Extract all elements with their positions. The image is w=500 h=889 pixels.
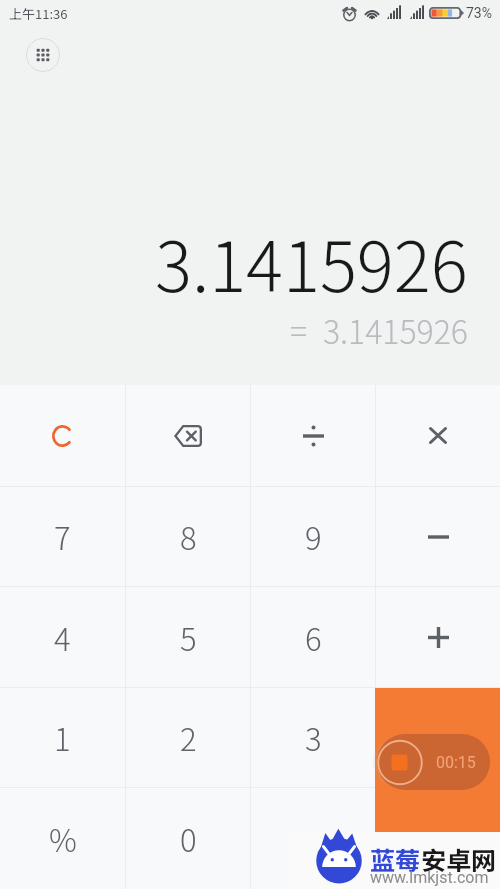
button[interactable]: Minus	[376, 487, 500, 586]
button[interactable]: %	[0, 788, 125, 889]
button[interactable]: 0	[126, 788, 250, 889]
button[interactable]: 3	[251, 688, 375, 787]
staticText: 3.1415926	[323, 307, 468, 353]
staticText: 3	[305, 715, 322, 760]
staticText: 9	[305, 514, 322, 559]
staticText: 1	[54, 715, 71, 760]
button[interactable]: Clear	[0, 385, 125, 486]
button[interactable]: 4	[0, 587, 125, 687]
button[interactable]: .	[251, 788, 375, 889]
staticText: 上午11:36	[9, 4, 68, 23]
staticText: 00:15	[436, 753, 476, 772]
button[interactable]: 6	[251, 587, 375, 687]
staticText: 8	[180, 514, 197, 559]
staticText: 0	[180, 816, 197, 861]
staticText: 2	[180, 715, 197, 760]
staticText: 4	[54, 615, 71, 660]
button[interactable]: 9	[251, 487, 375, 586]
button[interactable]: Divide	[251, 385, 375, 486]
button[interactable]: 8	[126, 487, 250, 586]
staticText: 7	[54, 514, 71, 559]
button[interactable]: 5	[126, 587, 250, 687]
staticText: =	[428, 740, 447, 789]
button[interactable]: Equals	[375, 688, 500, 889]
staticText: 安卓网	[421, 841, 497, 877]
staticText: 6	[305, 615, 322, 660]
button[interactable]: 2	[126, 688, 250, 787]
button[interactable]: Apps	[26, 38, 60, 72]
staticText: 3.1415926	[155, 212, 468, 312]
staticText: .	[309, 816, 317, 861]
staticText: 蓝莓	[370, 841, 421, 877]
button[interactable]: 7	[0, 487, 125, 586]
staticText: 5	[180, 615, 197, 660]
staticText: =	[290, 307, 308, 353]
staticText: www.lmkjst.com	[370, 868, 489, 887]
staticText: %	[49, 816, 77, 861]
button[interactable]: 1	[0, 688, 125, 787]
button[interactable]: Multiply	[376, 385, 500, 486]
staticText: 73%	[466, 5, 492, 21]
button[interactable]: Backspace	[126, 385, 250, 486]
button[interactable]: Plus	[376, 587, 500, 687]
